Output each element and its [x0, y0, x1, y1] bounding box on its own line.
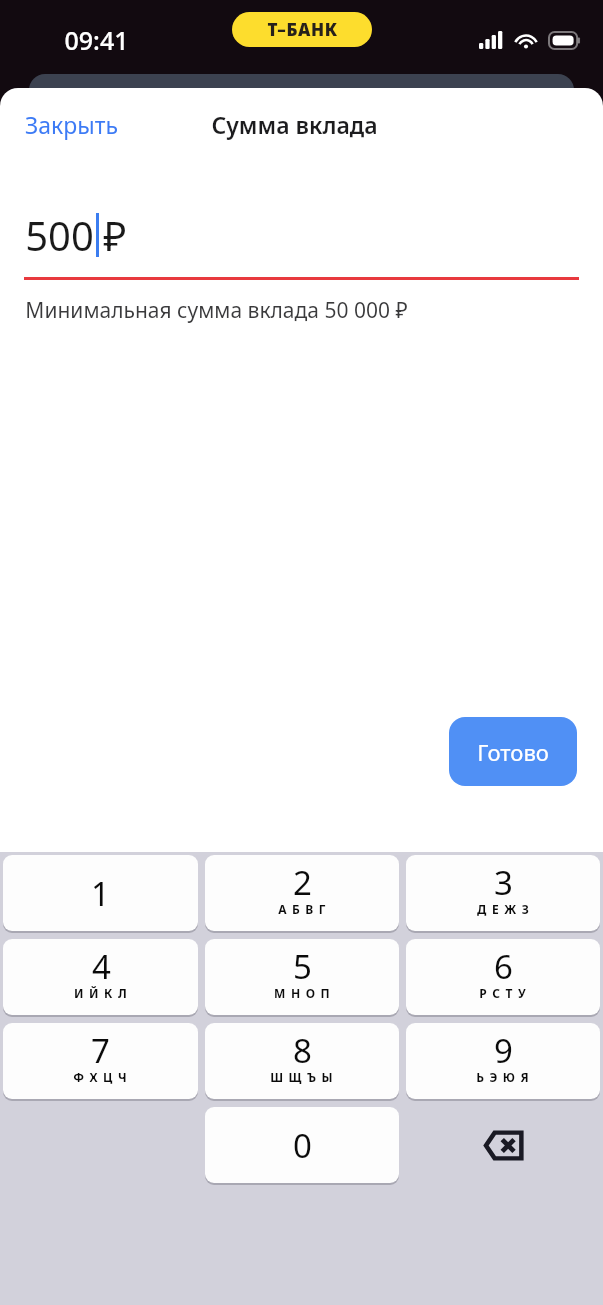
- staticText: Минимальная сумма вклада 50 000 ₽: [25, 296, 408, 325]
- staticText: Р С Т У: [479, 985, 527, 1001]
- button[interactable]: Готово: [449, 717, 577, 786]
- staticText: 500: [25, 208, 94, 262]
- staticText: Готово: [477, 737, 549, 767]
- button[interactable]: Закрыть: [0, 99, 143, 150]
- staticText: 0: [293, 1123, 312, 1168]
- staticText: А Б В Г: [278, 901, 327, 917]
- button[interactable]: 4: [3, 939, 198, 1015]
- staticText: 2: [293, 860, 312, 905]
- staticText: Ь Э Ю Я: [476, 1069, 530, 1085]
- staticText: М Н О П: [274, 985, 331, 1001]
- staticText: 7: [91, 1028, 110, 1073]
- staticText: Закрыть: [25, 109, 118, 140]
- staticText: Ф Х Ц Ч: [73, 1069, 128, 1085]
- staticText: 3: [494, 860, 513, 905]
- staticText: 6: [494, 944, 513, 989]
- staticText: 5: [293, 944, 312, 989]
- staticText: Сумма вклада: [211, 109, 378, 140]
- staticText: Д Е Ж З: [477, 901, 530, 917]
- button[interactable]: 0: [205, 1107, 399, 1183]
- button[interactable]: 7: [3, 1023, 198, 1099]
- button[interactable]: 3: [406, 855, 600, 931]
- button[interactable]: 5: [205, 939, 399, 1015]
- staticText: И Й К Л: [74, 985, 128, 1001]
- button[interactable]: 6: [406, 939, 600, 1015]
- staticText: 9: [494, 1028, 513, 1073]
- button[interactable]: 9: [406, 1023, 600, 1099]
- button[interactable]: Backspace: [406, 1107, 600, 1183]
- staticText: Ш Щ Ъ Ы: [270, 1069, 334, 1085]
- button[interactable]: 8: [205, 1023, 399, 1099]
- button[interactable]: 1: [3, 855, 198, 931]
- staticText: 09:41: [64, 23, 129, 57]
- staticText: 4: [92, 944, 111, 989]
- staticText: Т–БАНК: [267, 18, 338, 41]
- staticText: ₽: [103, 208, 127, 262]
- staticText: 1: [91, 871, 110, 916]
- staticText: 8: [293, 1028, 312, 1073]
- button[interactable]: 2: [205, 855, 399, 931]
